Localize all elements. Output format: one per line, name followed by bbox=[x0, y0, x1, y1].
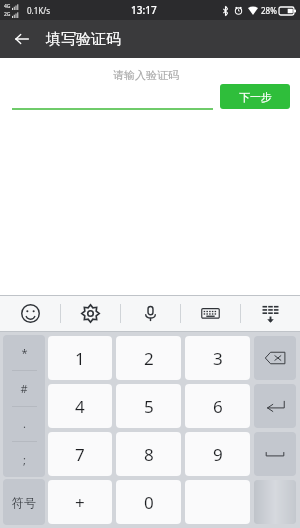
staticText: 下一步 bbox=[239, 90, 272, 104]
staticText: 符号 bbox=[12, 495, 36, 510]
staticText: 4 bbox=[75, 395, 85, 418]
staticText: 0.1K/s bbox=[27, 5, 51, 16]
button[interactable]: 9 bbox=[185, 432, 250, 476]
button[interactable]: 下一步 bbox=[220, 84, 290, 109]
staticText: + bbox=[75, 491, 85, 514]
staticText: 0 bbox=[144, 491, 154, 514]
staticText: 13:17 bbox=[131, 3, 157, 17]
staticText: 请输入验证码 bbox=[113, 68, 179, 82]
button[interactable]: + bbox=[48, 480, 112, 524]
staticText: 4G bbox=[4, 3, 11, 10]
button[interactable]: Hide keyboard bbox=[241, 295, 300, 332]
button[interactable]: 5 bbox=[116, 384, 181, 428]
staticText: ; bbox=[23, 452, 26, 467]
button[interactable]: Keyboard bbox=[181, 295, 240, 332]
button[interactable]: Space bbox=[254, 432, 296, 476]
staticText: 5 bbox=[144, 395, 154, 418]
button[interactable]: 0 bbox=[116, 480, 181, 524]
button[interactable]: 符号 bbox=[3, 479, 45, 525]
staticText: 1 bbox=[75, 347, 85, 370]
staticText: 7 bbox=[75, 443, 85, 466]
staticText: * bbox=[21, 345, 28, 360]
button[interactable]: Backspace bbox=[254, 336, 296, 380]
button[interactable]: 3 bbox=[185, 336, 250, 380]
button[interactable]: 6 bbox=[185, 384, 250, 428]
button[interactable]: Enter bbox=[254, 384, 296, 428]
staticText: 28% bbox=[261, 5, 277, 16]
button[interactable]: Back bbox=[6, 23, 38, 55]
staticText: 3 bbox=[213, 347, 223, 370]
button[interactable]: 2 bbox=[116, 336, 181, 380]
button[interactable]: Settings bbox=[61, 295, 120, 332]
button[interactable]: 1 bbox=[48, 336, 112, 380]
staticText: 2 bbox=[144, 347, 154, 370]
button[interactable]: Voice input bbox=[121, 295, 180, 332]
button[interactable]: More bbox=[254, 480, 296, 524]
button[interactable]: 8 bbox=[116, 432, 181, 476]
staticText: 9 bbox=[213, 443, 223, 466]
staticText: . bbox=[23, 416, 26, 431]
button[interactable]: * bbox=[3, 335, 45, 477]
staticText: 填写验证码 bbox=[46, 30, 121, 49]
staticText: 8 bbox=[144, 443, 154, 466]
staticText: 2G bbox=[4, 11, 11, 18]
button[interactable]: 4 bbox=[48, 384, 112, 428]
staticText: 6 bbox=[213, 395, 223, 418]
staticText: # bbox=[20, 381, 28, 396]
button[interactable]: 7 bbox=[48, 432, 112, 476]
button[interactable]: Emoji bbox=[0, 295, 60, 332]
